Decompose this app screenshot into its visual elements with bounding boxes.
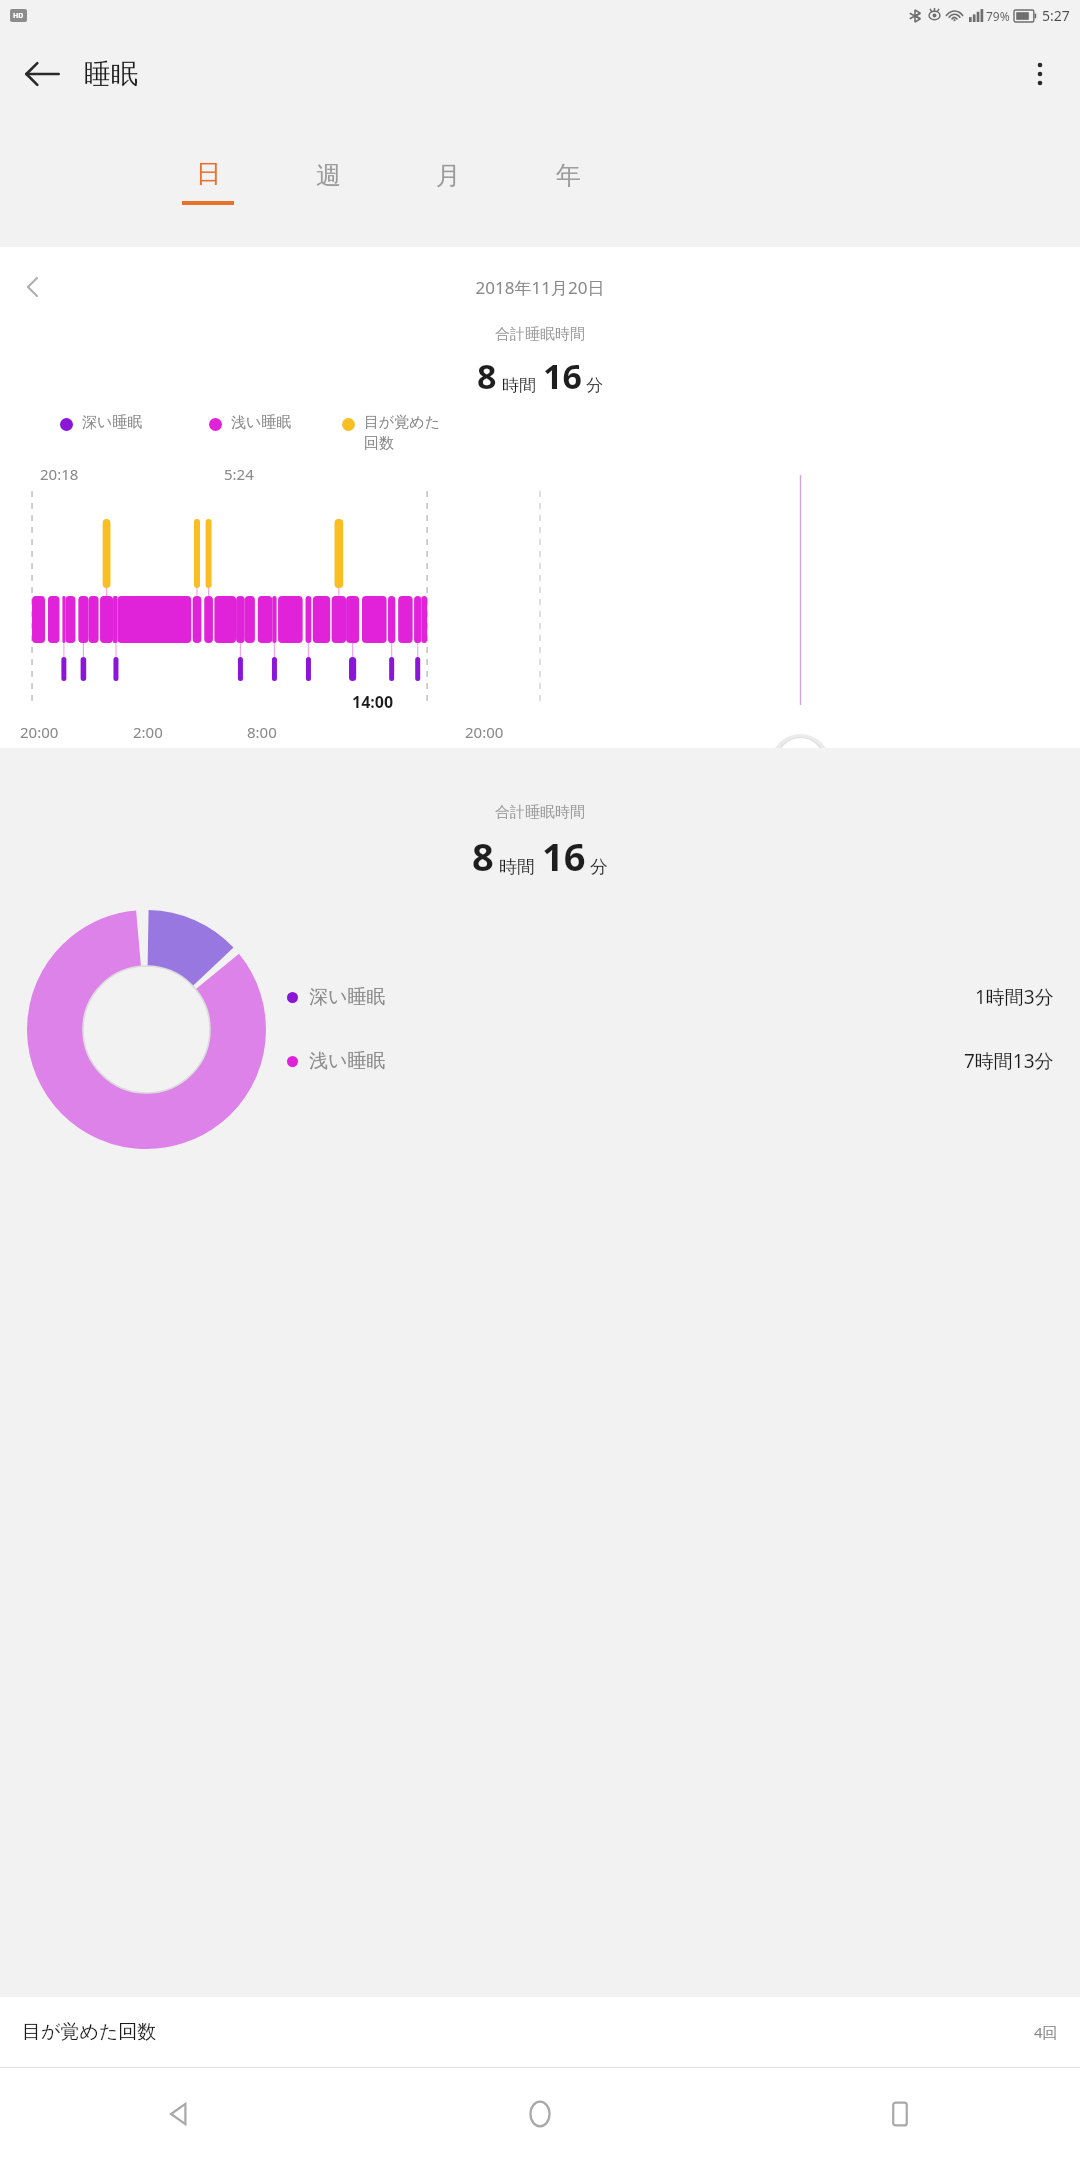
staticText: 4回	[1034, 2022, 1058, 2042]
staticText: 浅い睡眠	[309, 1049, 386, 1073]
button[interactable]: 月	[388, 116, 508, 247]
button[interactable]: 浅い睡眠	[209, 413, 292, 432]
staticText: 5:24	[224, 464, 254, 484]
button[interactable]: 深い睡眠	[287, 984, 1068, 1010]
button[interactable]: 目が覚めた回数	[0, 1997, 1080, 2067]
staticText: 2018年11月20日	[0, 276, 1080, 299]
staticText: 1時間3分	[975, 984, 1054, 1010]
staticText: 月	[436, 160, 461, 191]
staticText: 時間	[499, 856, 535, 879]
staticText: 8	[477, 353, 497, 399]
staticText: 14:00	[352, 691, 394, 713]
staticText: 日	[196, 158, 221, 189]
staticText: 時間	[502, 375, 536, 396]
staticText: 合計睡眠時間	[0, 325, 1080, 344]
staticText: 年	[556, 160, 581, 191]
button[interactable]: Back	[16, 48, 68, 100]
staticText: 目が覚めた回数	[22, 2020, 157, 2044]
staticText: 分	[586, 375, 603, 396]
button[interactable]: 浅い睡眠	[287, 1048, 1068, 1074]
staticText: 79%	[986, 8, 1010, 24]
staticText: 8:00	[247, 722, 277, 742]
staticText: 週	[316, 160, 341, 191]
staticText: 深い睡眠	[82, 413, 143, 432]
staticText: 20:00	[465, 722, 504, 742]
staticText: 睡眠	[84, 57, 138, 91]
button[interactable]: 週	[268, 116, 388, 247]
staticText: 5:27	[1042, 6, 1070, 25]
staticText: 20:00	[20, 722, 59, 742]
staticText: 分	[590, 856, 608, 879]
button[interactable]: 日	[148, 116, 268, 247]
button[interactable]: Recent apps	[720, 2068, 1080, 2160]
button[interactable]: 深い睡眠	[60, 413, 143, 432]
staticText: 目が覚めた	[364, 413, 441, 432]
staticText: 回数	[364, 434, 394, 453]
button[interactable]: 年	[508, 116, 628, 247]
button[interactable]: 目が覚めた	[342, 413, 441, 453]
staticText: HD	[13, 11, 24, 21]
button[interactable]: Back	[0, 2068, 360, 2160]
button[interactable]: Home	[360, 2068, 720, 2160]
staticText: 20:18	[40, 464, 79, 484]
staticText: 7時間13分	[964, 1048, 1054, 1074]
staticText: 合計睡眠時間	[0, 803, 1080, 822]
staticText: 2:00	[133, 722, 163, 742]
staticText: 8	[472, 830, 494, 882]
staticText: 深い睡眠	[309, 985, 386, 1009]
button[interactable]: Previous day	[8, 263, 56, 311]
staticText: 浅い睡眠	[231, 413, 292, 432]
staticText: 16	[543, 353, 582, 399]
button[interactable]: More options	[1014, 48, 1066, 100]
staticText: 16	[542, 830, 586, 882]
